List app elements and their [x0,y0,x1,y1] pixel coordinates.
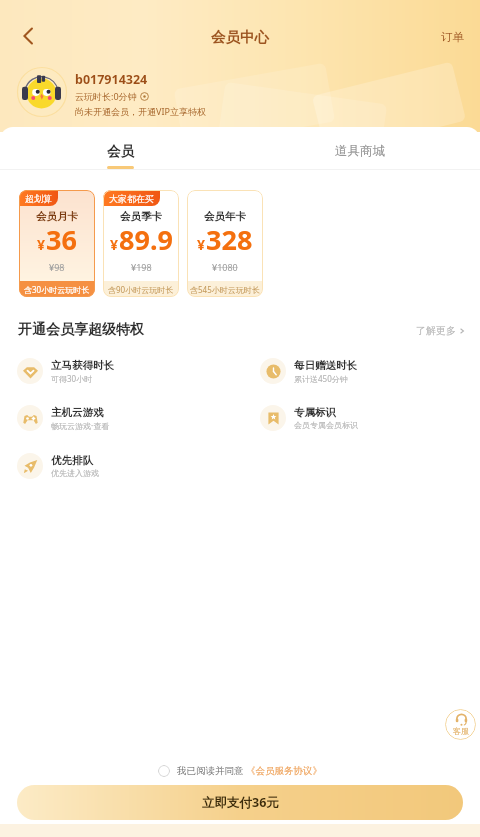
button[interactable]: 会员年卡 [187,190,263,297]
staticText: ¥198 [131,261,152,273]
staticText: 订单 [441,30,464,44]
staticText: 含90小时云玩时长 [108,284,174,295]
staticText: 含30小时云玩时长 [24,284,90,295]
staticText: 会员专属会员标识 [294,420,358,430]
button[interactable]: 主机云游戏 [17,405,110,431]
staticText: 立即支付36元 [202,794,279,811]
staticText: 优先排队 [51,454,93,467]
staticText: 超划算 [25,193,52,204]
staticText: 主机云游戏 [51,406,104,419]
staticText: ¥1080 [212,261,238,273]
staticText: 了解更多 [416,324,456,337]
staticText: 含545小时云玩时长 [190,284,260,295]
staticText: ¥98 [49,261,65,273]
button[interactable]: 了解更多 [416,324,466,337]
staticText: 客服 [453,726,469,736]
button[interactable]: 订单 [425,24,480,50]
button[interactable]: 优先排队 [17,453,99,479]
staticText: 累计送450分钟 [294,373,348,384]
staticText: 我已阅读并同意 《会员服务协议》 [177,764,322,777]
staticText: 开通会员享超级特权 [18,321,144,339]
button[interactable]: 立即支付36元 [17,785,463,820]
staticText: 36 [46,221,77,258]
button[interactable]: 立马获得时长 [17,358,114,384]
staticText: ¥ [37,235,46,254]
staticText: 优先进入游戏 [51,468,99,478]
staticText: 328 [206,221,253,258]
staticText: 每日赠送时长 [294,359,357,372]
button[interactable]: 会员季卡 [103,190,179,297]
staticText: 专属标识 [294,406,336,419]
button[interactable]: Back [8,16,48,56]
button[interactable]: 专属标识 [260,405,358,431]
staticText: 道具商城 [335,143,385,159]
staticText: ¥ [197,235,206,254]
staticText: 会员 [107,143,134,160]
staticText: ¥ [110,235,119,254]
staticText: 云玩时长:0分钟 [75,90,137,102]
staticText: 89.9 [119,221,173,258]
staticText: 会员季卡 [120,210,162,223]
staticText: 会员年卡 [204,210,246,223]
button[interactable]: 道具商城 [240,143,480,169]
button[interactable]: 会员 [0,143,240,169]
button[interactable]: 会员月卡 [19,190,95,297]
staticText: 可得30小时 [51,373,93,384]
staticText: 会员中心 [211,28,269,46]
staticText: 立马获得时长 [51,359,114,372]
button[interactable]: 我已阅读并同意 《会员服务协议》 [158,764,322,777]
staticText: 尚未开通会员，开通VIP立享特权 [75,105,206,117]
staticText: b017914324 [75,71,148,88]
button[interactable]: 客服 [445,709,476,740]
staticText: 畅玩云游戏·查看 [51,420,110,431]
staticText: 会员月卡 [36,210,78,223]
button[interactable]: 每日赠送时长 [260,358,357,384]
staticText: 大家都在买 [109,193,154,204]
